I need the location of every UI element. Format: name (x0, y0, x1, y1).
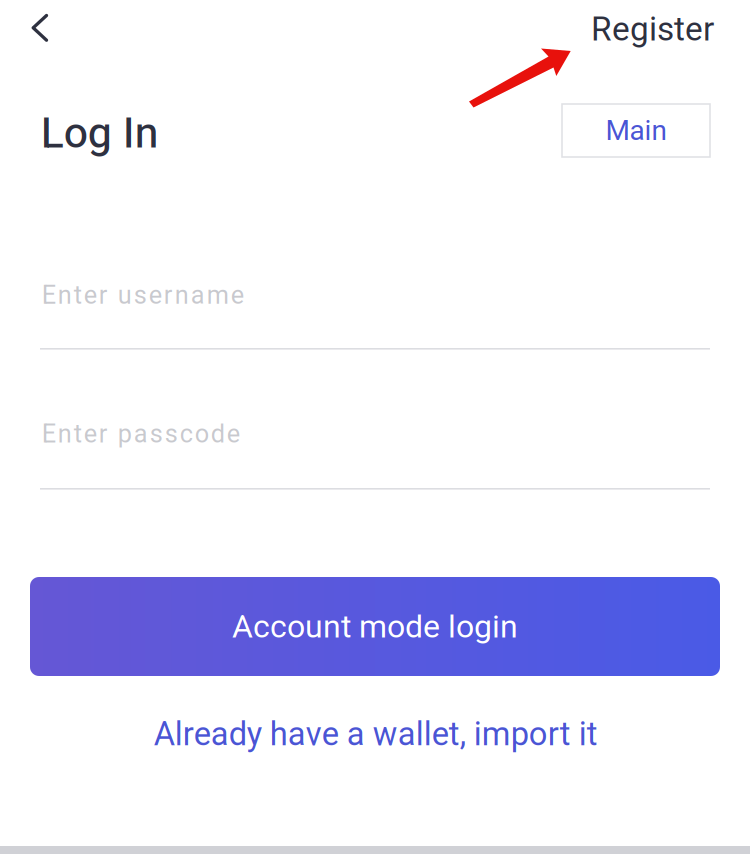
staticText: Enter passcode (42, 419, 240, 449)
staticText: Enter username (42, 280, 244, 310)
staticText: Account mode login (232, 608, 518, 645)
staticText: Already have a wallet, import it (154, 715, 598, 753)
button[interactable]: Main (0, 0, 750, 180)
staticText: Main (605, 114, 666, 147)
button[interactable]: Already have a wallet, import it (0, 0, 750, 60)
button[interactable]: Register (0, 0, 159, 58)
staticText: Log In (41, 108, 159, 158)
button[interactable]: Account mode login (0, 0, 750, 130)
button[interactable]: Back (0, 0, 80, 56)
staticText: Register (591, 10, 714, 49)
